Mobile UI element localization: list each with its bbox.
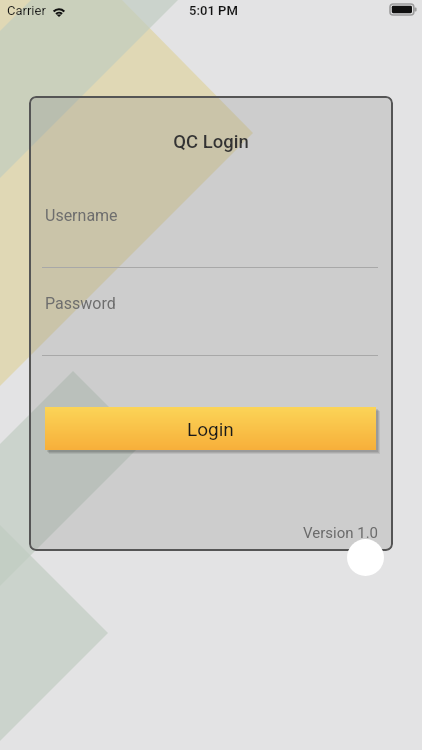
staticText: Password [45, 294, 116, 313]
other: Wi-Fi signal [52, 6, 66, 17]
staticText: Login [187, 418, 234, 440]
staticText: Carrier [7, 3, 46, 18]
button[interactable]: Login [45, 407, 376, 450]
staticText: Username [45, 206, 118, 225]
staticText: 5:01 PM [189, 3, 238, 18]
staticText: QC Login [29, 131, 393, 153]
other: Home [347, 539, 384, 576]
button[interactable]: Password [42, 285, 378, 356]
button[interactable]: Username [42, 197, 378, 268]
other: Battery [390, 4, 417, 15]
staticText: Version 1.0 [303, 524, 379, 542]
